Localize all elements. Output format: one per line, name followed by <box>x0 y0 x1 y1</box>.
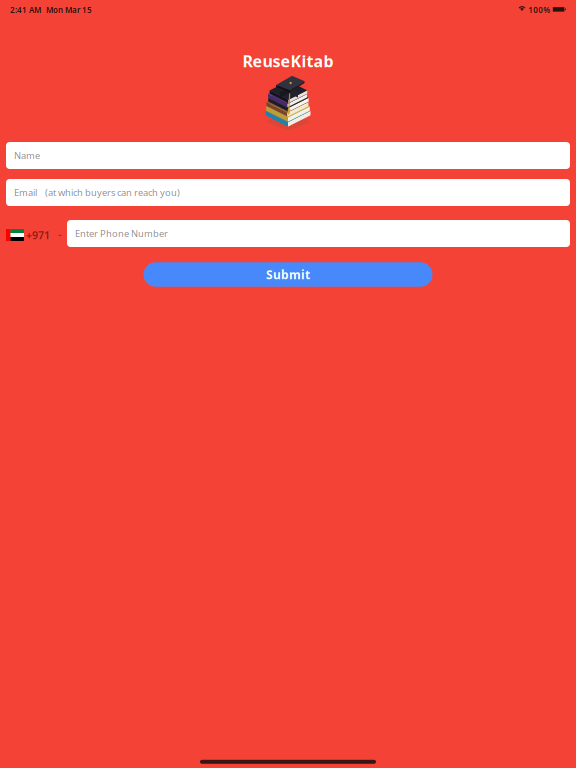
staticText: Submit <box>266 266 310 282</box>
staticText: - <box>58 226 61 241</box>
staticText: Enter Phone Number <box>75 227 168 240</box>
button[interactable]: Email <box>6 179 570 206</box>
staticText: 100% <box>528 5 550 15</box>
staticText: (at which buyers can reach you) <box>45 186 180 199</box>
button[interactable]: Name <box>6 142 570 169</box>
button[interactable]: Submit <box>143 262 432 287</box>
staticText: Name <box>14 149 40 162</box>
staticText: +971 <box>26 228 50 242</box>
staticText: Mon Mar 15 <box>46 5 92 15</box>
staticText: 2:41 AM <box>10 5 41 15</box>
staticText: ReuseKitab <box>242 50 333 72</box>
button[interactable]: Country code United Arab Emirates +971 <box>6 221 58 248</box>
staticText: Email <box>14 186 37 199</box>
button[interactable]: Enter Phone Number <box>67 220 570 247</box>
